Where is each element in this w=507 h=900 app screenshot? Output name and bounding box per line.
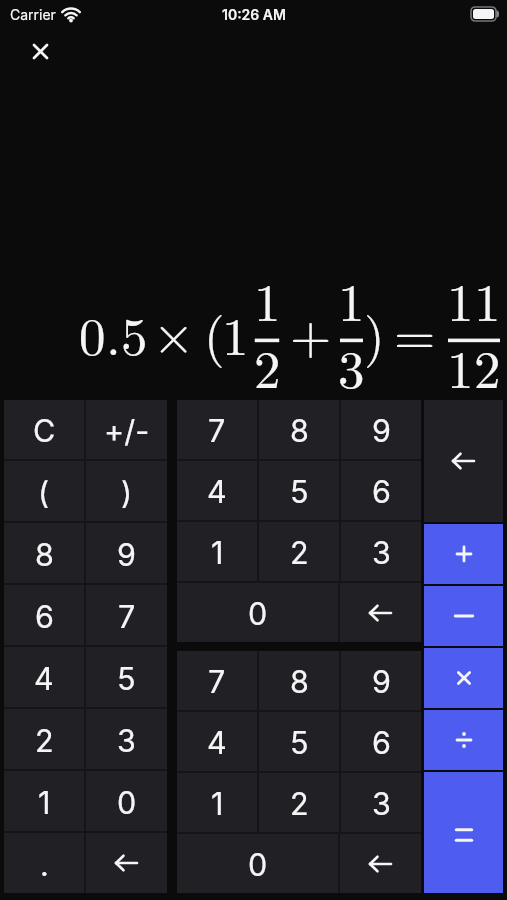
button[interactable] bbox=[424, 772, 503, 893]
button[interactable]: 3 bbox=[341, 522, 421, 581]
staticText: 1 bbox=[211, 785, 224, 822]
button[interactable]: 4 bbox=[4, 647, 84, 707]
button[interactable]: 6 bbox=[4, 585, 84, 645]
button[interactable]: 1 bbox=[177, 522, 257, 581]
staticText: 10:26 AM bbox=[222, 6, 286, 23]
staticText: 2 bbox=[290, 785, 309, 822]
button[interactable]: C bbox=[4, 400, 84, 459]
staticText: 9 bbox=[372, 663, 391, 700]
button[interactable]: +/- bbox=[86, 400, 167, 459]
button[interactable]: 3 bbox=[86, 709, 167, 769]
staticText: 4 bbox=[34, 660, 54, 697]
staticText: 8 bbox=[290, 412, 309, 449]
staticText: 0 bbox=[248, 846, 268, 883]
button[interactable]: 0 bbox=[177, 583, 338, 642]
staticText: . bbox=[40, 846, 49, 883]
button[interactable] bbox=[86, 833, 167, 893]
button[interactable] bbox=[424, 524, 503, 584]
button[interactable] bbox=[340, 583, 421, 642]
button[interactable]: ) bbox=[86, 461, 167, 521]
staticText: 3 bbox=[372, 534, 391, 571]
button[interactable]: 3 bbox=[341, 773, 421, 832]
staticText: 5 bbox=[117, 660, 136, 697]
staticText: 1 bbox=[38, 784, 51, 821]
button[interactable]: 2 bbox=[259, 522, 339, 581]
staticText: 1 bbox=[211, 534, 224, 571]
button[interactable]: 1 bbox=[4, 771, 84, 831]
button[interactable] bbox=[424, 400, 503, 522]
staticText: 9 bbox=[372, 412, 391, 449]
button[interactable]: 6 bbox=[341, 461, 421, 520]
staticText: 8 bbox=[290, 663, 309, 700]
button[interactable]: 8 bbox=[4, 523, 84, 583]
staticText: 3 bbox=[372, 785, 391, 822]
button[interactable]: 5 bbox=[259, 712, 339, 771]
staticText: 5 bbox=[290, 473, 309, 510]
staticText: 9 bbox=[117, 536, 136, 573]
button[interactable]: 4 bbox=[177, 712, 257, 771]
staticText: 5 bbox=[290, 724, 309, 761]
staticText: Carrier bbox=[10, 6, 56, 23]
staticText: +/- bbox=[104, 412, 150, 449]
staticText: C bbox=[33, 412, 56, 449]
button[interactable]: 5 bbox=[259, 461, 339, 520]
button[interactable] bbox=[424, 586, 503, 646]
button[interactable]: ( bbox=[4, 461, 84, 521]
button[interactable]: 7 bbox=[177, 400, 257, 459]
button[interactable]: 4 bbox=[177, 461, 257, 520]
staticText: ( bbox=[38, 474, 50, 511]
button[interactable]: 0 bbox=[177, 834, 338, 893]
staticText: 7 bbox=[208, 412, 226, 449]
staticText: 0 bbox=[117, 784, 137, 821]
button[interactable]: 1 bbox=[177, 773, 257, 832]
staticText: 4 bbox=[207, 473, 227, 510]
button[interactable]: 8 bbox=[259, 651, 339, 710]
staticText: 7 bbox=[208, 663, 226, 700]
button[interactable] bbox=[424, 710, 503, 770]
button[interactable]: 7 bbox=[177, 651, 257, 710]
staticText: 6 bbox=[372, 724, 391, 761]
staticText: 2 bbox=[290, 534, 309, 571]
staticText: 0 bbox=[248, 595, 268, 632]
staticText: 8 bbox=[35, 536, 54, 573]
staticText: ) bbox=[121, 474, 133, 511]
staticText: 6 bbox=[35, 598, 54, 635]
staticText: 3 bbox=[117, 722, 136, 759]
button[interactable] bbox=[424, 648, 503, 708]
button[interactable]: 0 bbox=[86, 771, 167, 831]
staticText: 7 bbox=[118, 598, 136, 635]
button[interactable] bbox=[26, 37, 54, 65]
staticText: 6 bbox=[372, 473, 391, 510]
button[interactable] bbox=[340, 834, 421, 893]
button[interactable]: 2 bbox=[259, 773, 339, 832]
button[interactable]: 9 bbox=[86, 523, 167, 583]
button[interactable]: 8 bbox=[259, 400, 339, 459]
staticText: 4 bbox=[207, 724, 227, 761]
button[interactable]: 9 bbox=[341, 400, 421, 459]
button[interactable]: 6 bbox=[341, 712, 421, 771]
button[interactable]: 2 bbox=[4, 709, 84, 769]
button[interactable]: 7 bbox=[86, 585, 167, 645]
button[interactable]: . bbox=[4, 833, 84, 893]
button[interactable]: 5 bbox=[86, 647, 167, 707]
staticText: 2 bbox=[35, 722, 54, 759]
button[interactable]: 9 bbox=[341, 651, 421, 710]
